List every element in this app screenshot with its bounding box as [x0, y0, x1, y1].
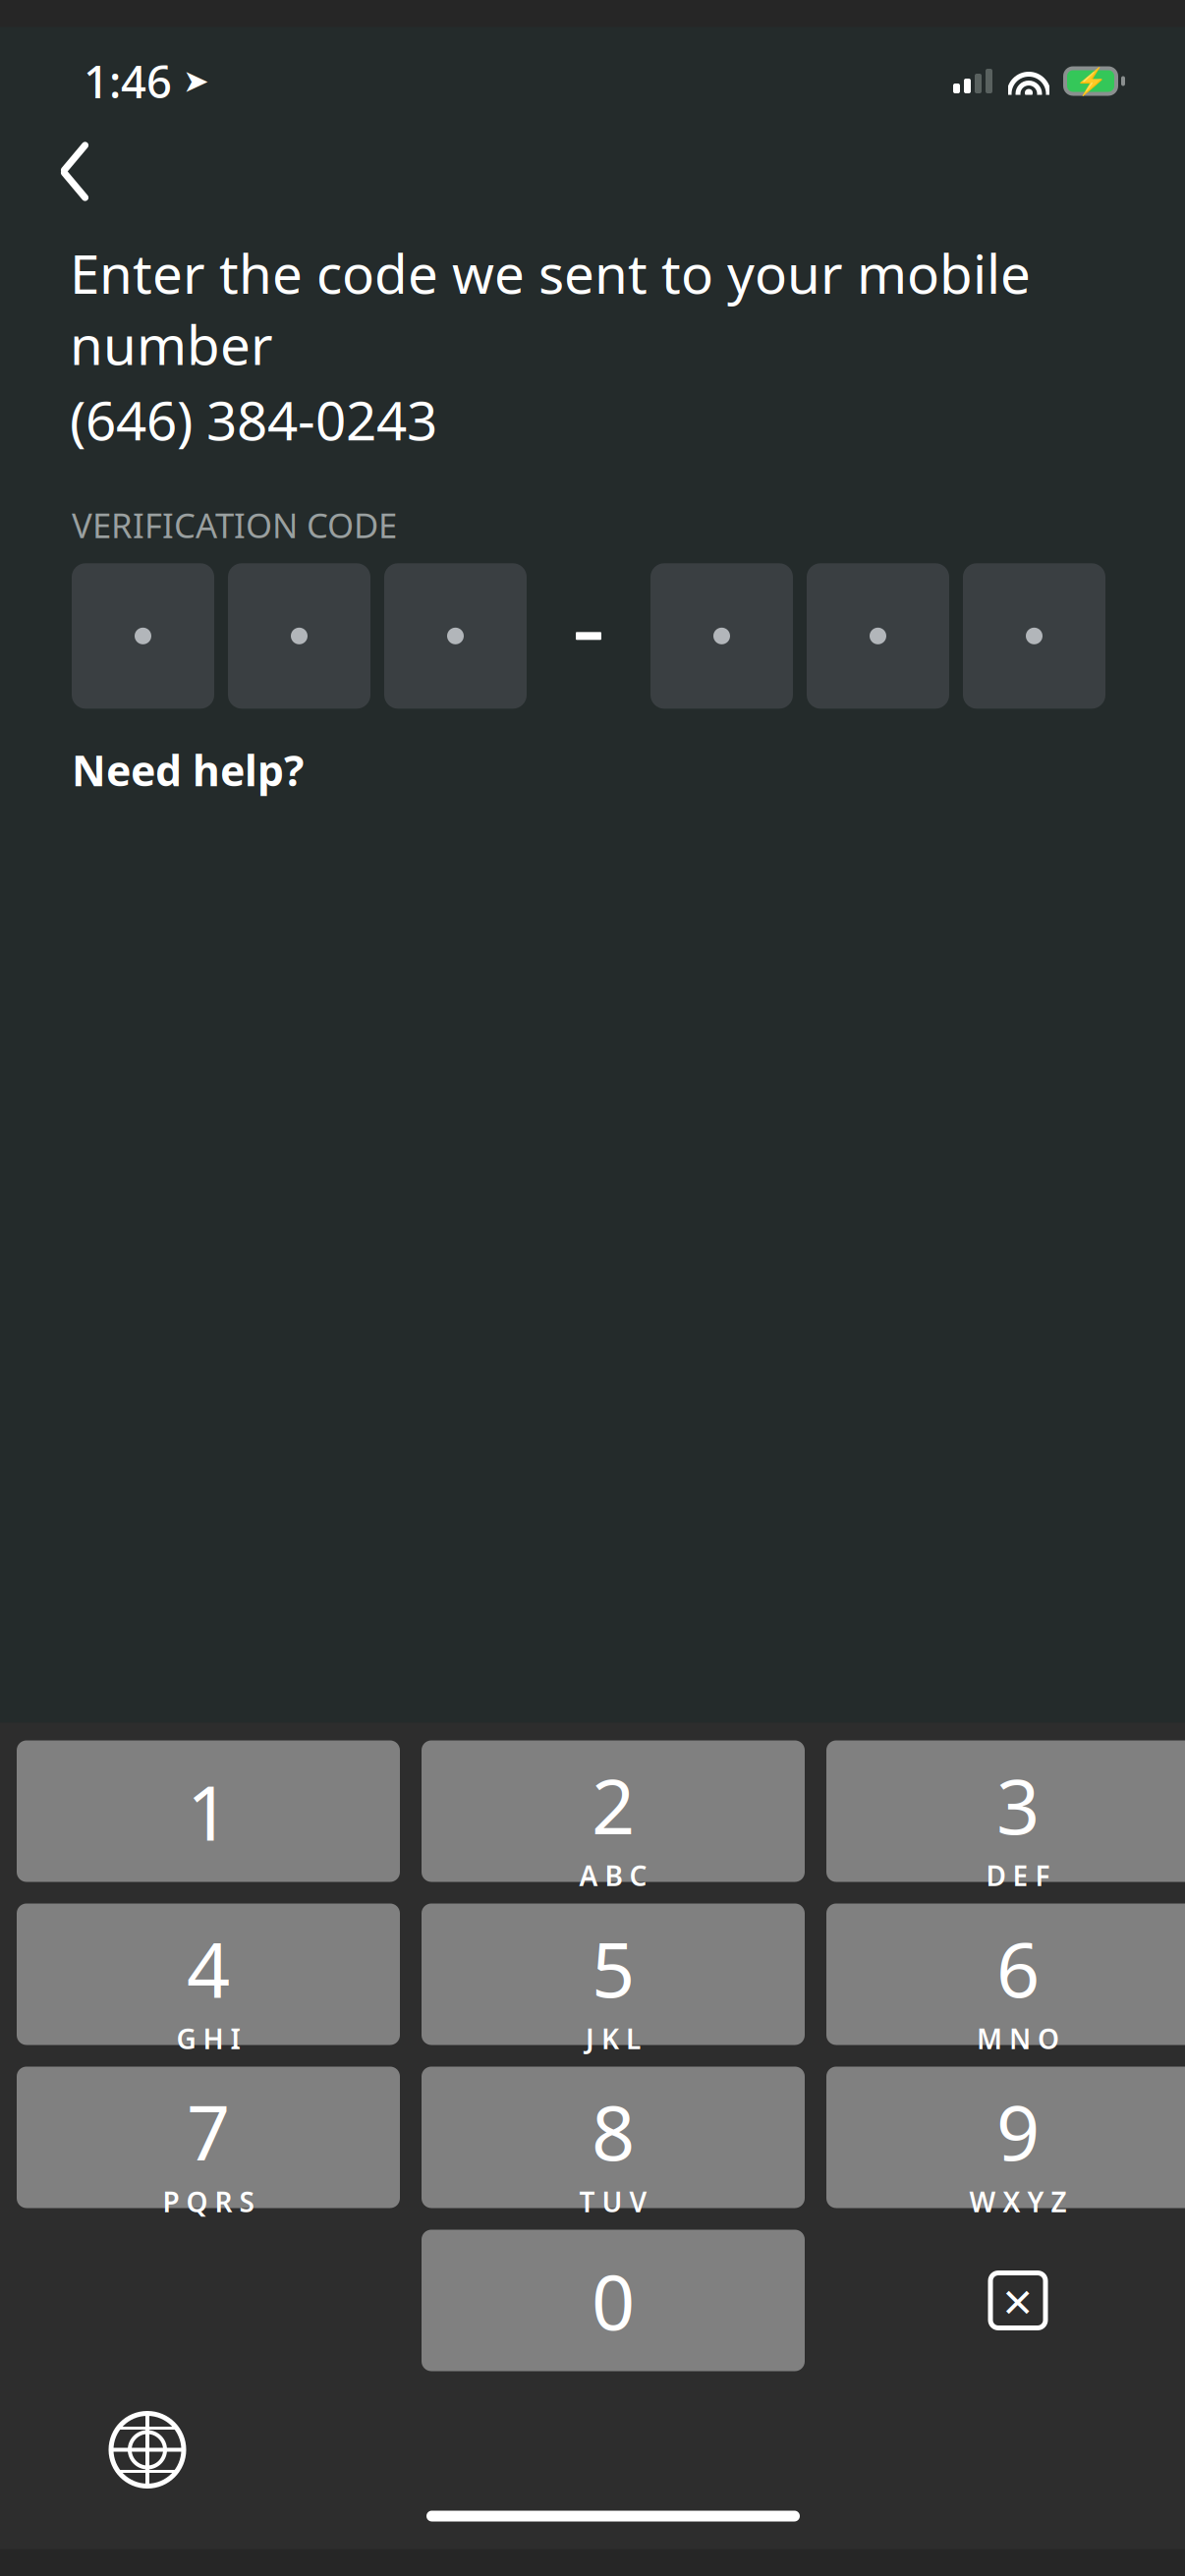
staticText: G H I: [176, 2020, 240, 2057]
button[interactable]: Delete: [826, 2230, 1185, 2371]
staticText: 8: [592, 2080, 635, 2181]
staticText: Enter the code we sent to your mobile nu…: [70, 237, 1031, 380]
staticText: (646) 384-0243: [70, 384, 437, 455]
staticText: 6: [996, 1917, 1040, 2018]
staticText: A B C: [579, 1857, 647, 1894]
button[interactable]: 4: [17, 1904, 400, 2045]
button[interactable]: Need help?: [72, 732, 304, 808]
staticText: 2: [592, 1754, 635, 1855]
button[interactable]: 3: [826, 1740, 1185, 1882]
staticText: 9: [996, 2080, 1040, 2181]
button[interactable]: 0: [422, 2230, 805, 2371]
staticText: D E F: [986, 1857, 1050, 1894]
button[interactable]: 1: [17, 1740, 400, 1882]
staticText: T U V: [579, 2183, 647, 2220]
button[interactable]: Change keyboard: [20, 2397, 216, 2503]
staticText: 5: [592, 1917, 635, 2018]
staticText: ×: [1003, 2266, 1033, 2335]
button[interactable]: 8: [422, 2067, 805, 2208]
staticText: 1: [187, 1761, 230, 1862]
button[interactable]: 9: [826, 2067, 1185, 2208]
staticText: M N O: [977, 2020, 1059, 2057]
staticText: 0: [592, 2250, 635, 2351]
staticText: J K L: [586, 2020, 641, 2057]
staticText: W X Y Z: [969, 2183, 1067, 2220]
staticText: Need help?: [72, 742, 304, 798]
staticText: 7: [187, 2080, 230, 2181]
button[interactable]: 2: [422, 1740, 805, 1882]
button[interactable]: 5: [422, 1904, 805, 2045]
staticText: ⚡: [1074, 66, 1107, 96]
button[interactable]: 6: [826, 1904, 1185, 2045]
staticText: 4: [187, 1917, 230, 2018]
staticText: 3: [996, 1754, 1040, 1855]
staticText: 1:46: [84, 51, 172, 111]
staticText: ➤: [172, 63, 209, 99]
staticText: VERIFICATION CODE: [72, 502, 397, 548]
button[interactable]: 7: [17, 2067, 400, 2208]
staticText: P Q R S: [163, 2183, 254, 2220]
button[interactable]: Back: [0, 127, 117, 216]
